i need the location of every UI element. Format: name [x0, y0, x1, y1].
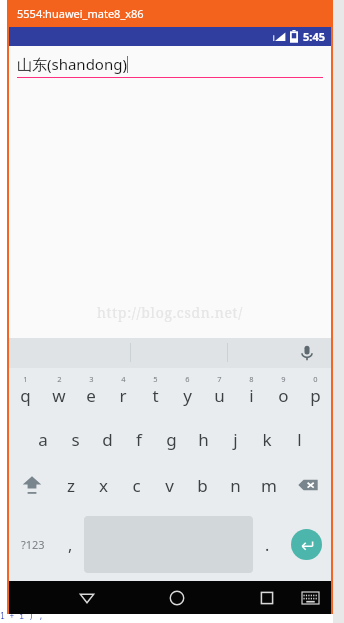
button[interactable]: l: [283, 416, 315, 462]
staticText: 山东(shandong): [17, 54, 127, 74]
staticText: p: [310, 384, 321, 407]
button[interactable]: Voice input: [295, 341, 319, 365]
staticText: 7: [217, 374, 222, 384]
button[interactable]: 3: [75, 368, 107, 416]
button[interactable]: Recent apps: [249, 581, 285, 614]
staticText: t: [152, 384, 159, 407]
staticText: z: [67, 474, 75, 497]
button[interactable]: m: [252, 462, 285, 508]
button[interactable]: k: [251, 416, 283, 462]
staticText: 8: [249, 374, 254, 384]
button[interactable]: x: [87, 462, 120, 508]
staticText: 1 + i ) ,: [0, 610, 44, 621]
staticText: k: [262, 428, 272, 451]
staticText: d: [102, 428, 113, 451]
staticText: h: [198, 428, 209, 451]
button[interactable]: Back: [69, 581, 105, 614]
button[interactable]: c: [120, 462, 153, 508]
button[interactable]: Backspace: [285, 462, 331, 508]
staticText: 5:45: [303, 29, 325, 44]
button[interactable]: ,: [56, 508, 84, 581]
staticText: u: [214, 384, 225, 407]
staticText: 2: [57, 374, 62, 384]
staticText: m: [261, 474, 277, 497]
staticText: ?123: [21, 537, 45, 552]
staticText: 9: [281, 374, 286, 384]
staticText: v: [165, 474, 174, 497]
button[interactable]: g: [155, 416, 187, 462]
button[interactable]: .: [253, 508, 281, 581]
staticText: http://blog.csdn.net/: [97, 303, 243, 322]
staticText: c: [132, 474, 141, 497]
button[interactable]: j: [219, 416, 251, 462]
staticText: i: [249, 384, 254, 407]
staticText: 0: [313, 374, 318, 384]
button[interactable]: b: [186, 462, 219, 508]
button[interactable]: d: [91, 416, 123, 462]
button[interactable]: Enter: [291, 529, 322, 560]
staticText: .: [265, 534, 270, 556]
button[interactable]: Home: [159, 581, 195, 614]
staticText: n: [230, 474, 241, 497]
button[interactable]: 2: [42, 368, 75, 416]
button[interactable]: a: [26, 416, 59, 462]
button[interactable]: 0: [299, 368, 331, 416]
staticText: y: [183, 384, 192, 407]
staticText: f: [136, 428, 142, 451]
button[interactable]: z: [54, 462, 87, 508]
staticText: 4: [121, 374, 126, 384]
button[interactable]: n: [219, 462, 252, 508]
button[interactable]: v: [153, 462, 186, 508]
button[interactable]: 山东(shandong): [17, 54, 323, 78]
button[interactable]: 8: [235, 368, 267, 416]
staticText: l: [297, 428, 302, 451]
button[interactable]: 4: [107, 368, 139, 416]
staticText: 1: [23, 374, 28, 384]
button[interactable]: h: [187, 416, 219, 462]
staticText: x: [99, 474, 108, 497]
button[interactable]: 7: [203, 368, 235, 416]
staticText: 5554:huawei_mate8_x86: [17, 6, 144, 21]
staticText: 5: [153, 374, 158, 384]
button[interactable]: 1: [9, 368, 42, 416]
staticText: b: [197, 474, 208, 497]
staticText: w: [52, 384, 66, 407]
button[interactable]: 6: [171, 368, 203, 416]
staticText: j: [233, 428, 238, 451]
staticText: ,: [68, 534, 73, 556]
staticText: 6: [185, 374, 190, 384]
staticText: e: [86, 384, 96, 407]
button[interactable]: Switch keyboard: [293, 581, 327, 614]
staticText: r: [119, 384, 127, 407]
button[interactable]: Shift: [9, 462, 54, 508]
staticText: q: [20, 384, 31, 407]
staticText: g: [166, 428, 177, 451]
staticText: s: [71, 428, 80, 451]
staticText: a: [38, 428, 48, 451]
button[interactable]: ?123: [9, 508, 56, 581]
staticText: 3: [89, 374, 94, 384]
button[interactable]: f: [123, 416, 155, 462]
staticText: o: [278, 384, 289, 407]
button[interactable]: s: [59, 416, 91, 462]
button[interactable]: 9: [267, 368, 299, 416]
button[interactable]: 5: [139, 368, 171, 416]
